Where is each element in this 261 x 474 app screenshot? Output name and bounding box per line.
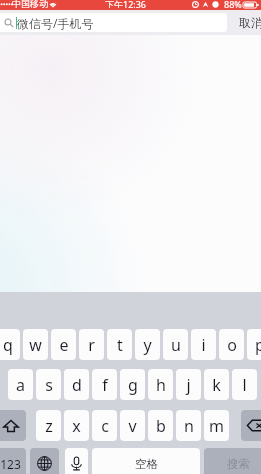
button[interactable]: f <box>92 369 117 400</box>
staticText: 123 <box>0 456 21 472</box>
staticText: i <box>201 334 206 356</box>
button[interactable]: w <box>23 329 48 360</box>
staticText: w <box>29 334 42 356</box>
staticText: u <box>171 334 181 356</box>
button[interactable]: r <box>79 329 104 360</box>
staticText: d <box>72 374 82 396</box>
button[interactable]: 微信号/手机号 <box>0 13 227 32</box>
button[interactable]: p <box>247 329 261 360</box>
button[interactable]: 空格 <box>92 448 200 474</box>
staticText: n <box>184 415 194 437</box>
button[interactable]: l <box>232 369 257 400</box>
button[interactable]: q <box>0 329 20 360</box>
staticText: c <box>101 415 109 437</box>
button[interactable]: Switch language <box>30 448 59 474</box>
button[interactable]: m <box>204 410 229 441</box>
staticText: 取消 <box>239 15 261 30</box>
staticText: 微信号/手机号 <box>17 15 94 31</box>
staticText: a <box>16 374 25 396</box>
button[interactable]: e <box>51 329 76 360</box>
button[interactable]: n <box>176 410 201 441</box>
button[interactable]: h <box>148 369 173 400</box>
staticText: s <box>45 374 53 396</box>
staticText: r <box>88 334 95 356</box>
staticText: e <box>59 334 69 356</box>
staticText: h <box>156 374 166 396</box>
staticText: v <box>128 415 137 437</box>
button[interactable]: k <box>204 369 229 400</box>
staticText: p <box>255 334 261 356</box>
button[interactable]: v <box>120 410 145 441</box>
button[interactable]: Backspace <box>241 410 261 441</box>
staticText: y <box>143 334 152 356</box>
button[interactable]: Shift <box>0 410 26 441</box>
button[interactable]: d <box>64 369 89 400</box>
button[interactable]: y <box>135 329 160 360</box>
staticText: b <box>156 415 166 437</box>
button[interactable]: o <box>219 329 244 360</box>
button[interactable]: i <box>191 329 216 360</box>
staticText: g <box>128 374 138 396</box>
button[interactable]: j <box>176 369 201 400</box>
staticText: z <box>45 415 53 437</box>
button[interactable]: t <box>107 329 132 360</box>
staticText: t <box>117 334 123 356</box>
button[interactable]: Voice input <box>65 448 88 474</box>
staticText: o <box>227 334 237 356</box>
button[interactable]: 取消 <box>236 10 261 35</box>
staticText: 搜索 <box>227 457 250 471</box>
staticText: q <box>3 334 13 356</box>
staticText: x <box>72 415 81 437</box>
button[interactable]: 搜索 <box>204 448 261 474</box>
staticText: l <box>242 374 247 396</box>
button[interactable]: g <box>120 369 145 400</box>
staticText: 空格 <box>135 457 158 471</box>
staticText: 中国移动 <box>12 0 48 8</box>
staticText: k <box>212 374 221 396</box>
staticText: m <box>209 415 224 437</box>
button[interactable]: u <box>163 329 188 360</box>
staticText: 88% <box>224 0 242 8</box>
button[interactable]: 123 <box>0 448 26 474</box>
button[interactable]: c <box>92 410 117 441</box>
button[interactable]: s <box>36 369 61 400</box>
staticText: 下午12:36 <box>105 0 147 8</box>
button[interactable]: z <box>36 410 61 441</box>
button[interactable]: x <box>64 410 89 441</box>
button[interactable]: b <box>148 410 173 441</box>
button[interactable]: a <box>8 369 33 400</box>
staticText: f <box>102 374 108 396</box>
staticText: j <box>186 374 191 396</box>
